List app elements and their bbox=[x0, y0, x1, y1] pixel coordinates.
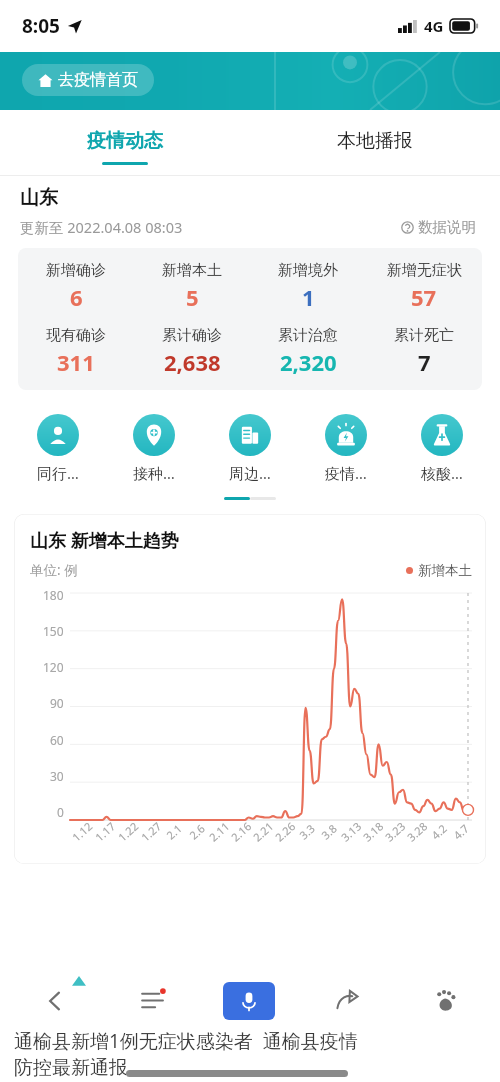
staticText: 6 bbox=[70, 282, 83, 312]
button[interactable]: Voice search bbox=[200, 970, 298, 1032]
button[interactable]: 新增本土 bbox=[134, 261, 250, 312]
staticText: 累计治愈 bbox=[278, 326, 338, 345]
button[interactable]: 累计治愈 bbox=[250, 326, 366, 377]
other: 接种… bbox=[133, 414, 175, 456]
staticText: 新增确诊 bbox=[46, 261, 106, 280]
staticText: 0 bbox=[57, 804, 64, 820]
staticText: 120 bbox=[43, 659, 64, 675]
staticText: 3.28 bbox=[404, 819, 430, 844]
button[interactable]: 本地播报 bbox=[250, 110, 500, 176]
staticText: 山东 新增本土趋势 bbox=[30, 528, 179, 553]
staticText: 现有确诊 bbox=[46, 326, 106, 345]
staticText: 4G bbox=[424, 16, 444, 36]
button[interactable]: Home bbox=[396, 970, 494, 1032]
staticText: 2.21 bbox=[250, 819, 276, 844]
other: 核酸… bbox=[421, 414, 463, 456]
staticText: 新增无症状 bbox=[387, 261, 462, 280]
button[interactable]: 接种… bbox=[106, 410, 202, 487]
button[interactable]: Back bbox=[6, 970, 103, 1032]
staticText: 150 bbox=[43, 623, 64, 639]
staticText: 1.27 bbox=[138, 819, 164, 844]
staticText: 累计确诊 bbox=[162, 326, 222, 345]
staticText: 5 bbox=[186, 282, 199, 312]
staticText: 新增本土 bbox=[162, 261, 222, 280]
other: 同行… bbox=[37, 414, 79, 456]
staticText: 1.22 bbox=[115, 819, 141, 844]
staticText: 疫情… bbox=[325, 463, 367, 483]
staticText: 数据说明 bbox=[418, 218, 476, 236]
button[interactable]: 现有确诊 bbox=[18, 326, 134, 377]
staticText: 累计死亡 bbox=[394, 326, 454, 345]
staticText: 60 bbox=[50, 732, 64, 748]
staticText: 3.18 bbox=[360, 819, 386, 844]
staticText: 311 bbox=[57, 347, 95, 377]
staticText: 57 bbox=[411, 282, 437, 312]
staticText: 2.26 bbox=[272, 819, 298, 844]
button[interactable]: 数据说明 bbox=[397, 214, 480, 240]
staticText: 1 bbox=[302, 282, 315, 312]
staticText: 4.2 bbox=[428, 821, 450, 842]
staticText: 3.13 bbox=[338, 819, 364, 844]
staticText: 3.8 bbox=[318, 821, 340, 842]
other: 疫情… bbox=[325, 414, 367, 456]
staticText: 单位: 例 bbox=[30, 561, 78, 579]
button[interactable]: 新增无症状 bbox=[366, 261, 482, 312]
staticText: 2,638 bbox=[164, 347, 221, 377]
button[interactable]: 累计确诊 bbox=[134, 326, 250, 377]
button[interactable]: 疫情动态 bbox=[0, 110, 250, 176]
button[interactable]: 疫情… bbox=[298, 410, 394, 487]
button[interactable]: 新增境外 bbox=[250, 261, 366, 312]
button[interactable]: 新增确诊 bbox=[18, 261, 134, 312]
staticText: 更新至 2022.04.08 08:03 bbox=[20, 217, 183, 237]
staticText: 本地播报 bbox=[337, 129, 413, 153]
staticText: 1.17 bbox=[92, 819, 118, 844]
button[interactable]: 核酸… bbox=[394, 410, 490, 487]
staticText: 2.1 bbox=[163, 821, 185, 842]
staticText: 2.6 bbox=[186, 821, 208, 842]
staticText: 防控最新通报 bbox=[14, 1056, 128, 1080]
staticText: 新增本土 bbox=[418, 562, 472, 579]
staticText: 4.7 bbox=[450, 821, 472, 842]
staticText: 去疫情首页 bbox=[58, 70, 138, 90]
staticText: 新增境外 bbox=[278, 261, 338, 280]
button[interactable]: 同行… bbox=[10, 410, 106, 487]
staticText: 7 bbox=[418, 347, 431, 377]
staticText: 180 bbox=[43, 587, 64, 603]
staticText: 周边… bbox=[229, 463, 271, 483]
staticText: 3.23 bbox=[382, 819, 408, 844]
staticText: 同行… bbox=[37, 463, 79, 483]
staticText: 核酸… bbox=[421, 463, 463, 483]
other: 周边… bbox=[229, 414, 271, 456]
staticText: 山东 bbox=[20, 186, 58, 210]
staticText: 疫情动态 bbox=[87, 129, 163, 153]
staticText: 3.3 bbox=[296, 821, 318, 842]
button[interactable]: 去疫情首页 bbox=[22, 64, 154, 96]
staticText: 30 bbox=[50, 768, 64, 784]
staticText: 通榆县新增1例无症状感染者 通榆县疫情 bbox=[14, 1028, 358, 1054]
staticText: 2.16 bbox=[228, 819, 254, 844]
staticText: 90 bbox=[50, 695, 64, 711]
button[interactable]: 周边… bbox=[202, 410, 298, 487]
staticText: 接种… bbox=[133, 463, 175, 483]
staticText: 2.11 bbox=[206, 819, 232, 844]
button[interactable]: Share bbox=[298, 970, 396, 1032]
button[interactable]: 累计死亡 bbox=[366, 326, 482, 377]
button[interactable]: Menu bbox=[103, 970, 200, 1032]
staticText: 8:05 bbox=[22, 13, 60, 39]
staticText: 1.12 bbox=[69, 819, 95, 844]
staticText: 2,320 bbox=[280, 347, 337, 377]
